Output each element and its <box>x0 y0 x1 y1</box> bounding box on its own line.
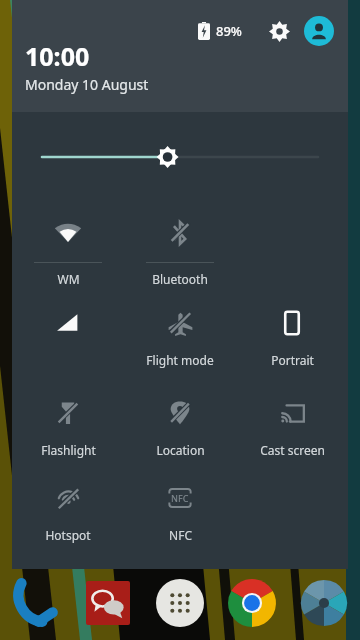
button[interactable]: All apps <box>144 566 216 640</box>
staticText: 10:00 <box>25 39 90 73</box>
staticText: Location <box>156 442 205 458</box>
button[interactable]: Location <box>124 382 236 467</box>
staticText: NFC <box>169 527 192 543</box>
staticText: Flight mode <box>146 352 214 368</box>
button[interactable]: Bluetooth <box>124 202 236 292</box>
button[interactable]: Portrait <box>236 292 348 382</box>
button[interactable]: NFC <box>124 467 236 552</box>
staticText: NFC <box>171 492 189 504</box>
button[interactable]: Flashlight <box>12 382 124 467</box>
staticText: WM <box>57 271 80 287</box>
staticText: Bluetooth <box>152 271 208 287</box>
button[interactable]: User account <box>304 16 334 46</box>
button[interactable]: Photos <box>288 566 360 640</box>
button[interactable]: Cast screen <box>236 382 348 467</box>
button[interactable]: Mobile signal <box>12 292 124 382</box>
staticText: Cast screen <box>260 442 325 458</box>
button[interactable]: Brightness <box>12 112 348 202</box>
button[interactable]: Flight mode <box>124 292 236 382</box>
staticText: Flashlight <box>41 442 96 458</box>
button[interactable]: Settings <box>262 14 296 48</box>
button[interactable]: Wi-Fi <box>12 202 124 292</box>
staticText: Monday 10 August <box>25 75 149 94</box>
staticText: Portrait <box>271 352 314 368</box>
staticText: 89% <box>216 22 242 40</box>
button[interactable]: Phone <box>0 566 72 640</box>
button[interactable]: Hotspot <box>12 467 124 552</box>
button[interactable]: Chrome <box>216 566 288 640</box>
staticText: Hotspot <box>45 527 91 543</box>
button[interactable]: Messaging <box>72 566 144 640</box>
